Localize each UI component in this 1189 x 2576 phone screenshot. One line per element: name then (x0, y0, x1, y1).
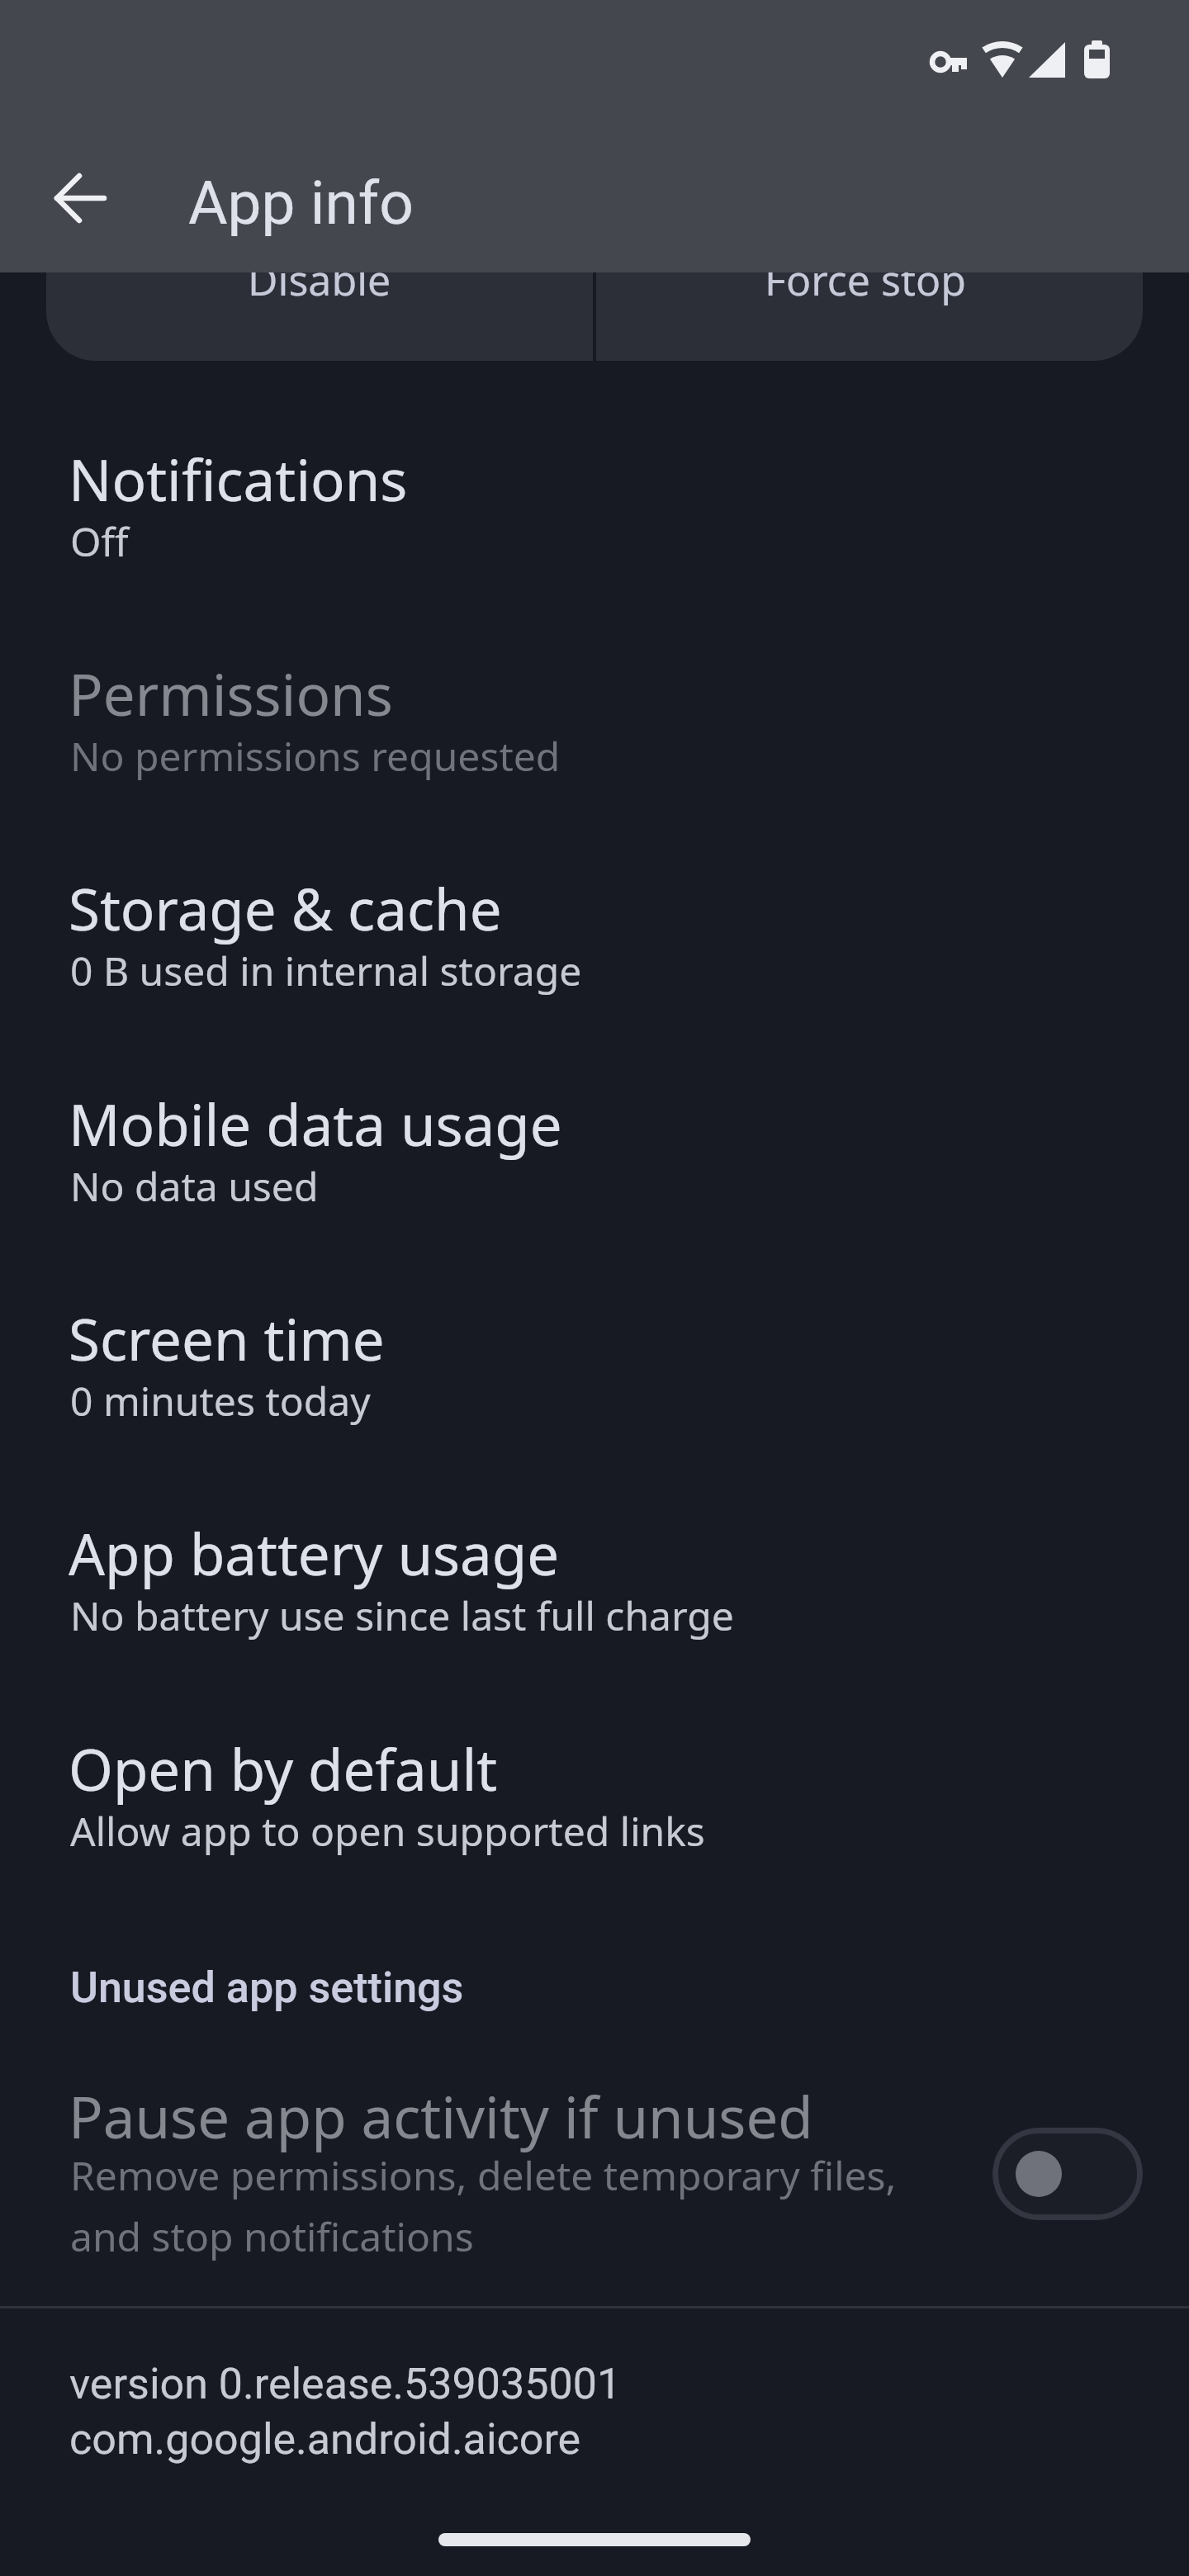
staticText: Unused app settings (70, 1963, 464, 2013)
button[interactable] (596, 206, 1143, 361)
staticText: Off (70, 514, 129, 568)
staticText: No permissions requested (70, 729, 561, 783)
button[interactable] (0, 828, 1189, 1043)
staticText: Pause app activity if unused (69, 2077, 813, 2155)
staticText: No data used (70, 1159, 319, 1213)
staticText: Mobile data usage (69, 1085, 562, 1163)
button[interactable] (0, 1688, 1189, 1903)
button[interactable] (45, 163, 115, 233)
button[interactable] (0, 613, 1189, 828)
staticText: Allow app to open supported links (70, 1804, 705, 1858)
staticText: Disable (248, 252, 391, 308)
button[interactable] (0, 1473, 1189, 1688)
staticText: Notifications (69, 440, 408, 518)
staticText: App info (188, 168, 414, 239)
button[interactable] (0, 399, 1189, 613)
staticText: Permissions (69, 655, 393, 732)
button[interactable] (0, 1044, 1189, 1258)
button[interactable] (46, 206, 593, 361)
staticText: 0 B used in internal storage (70, 944, 582, 997)
staticText: version 0.release.539035001 com.google.a… (69, 2359, 622, 2465)
staticText: Force stop (765, 252, 967, 308)
staticText: 0 minutes today (70, 1374, 371, 1428)
button[interactable] (0, 2039, 1189, 2287)
staticText: Screen time (69, 1300, 385, 1377)
staticText: Storage & cache (69, 869, 502, 947)
button[interactable] (0, 1258, 1189, 1473)
staticText: No battery use since last full charge (70, 1589, 734, 1642)
button[interactable] (992, 2128, 1143, 2220)
staticText: Open by default (69, 1730, 498, 1807)
staticText: Remove permissions, delete temporary fil… (70, 2148, 897, 2263)
staticText: App battery usage (69, 1514, 560, 1592)
